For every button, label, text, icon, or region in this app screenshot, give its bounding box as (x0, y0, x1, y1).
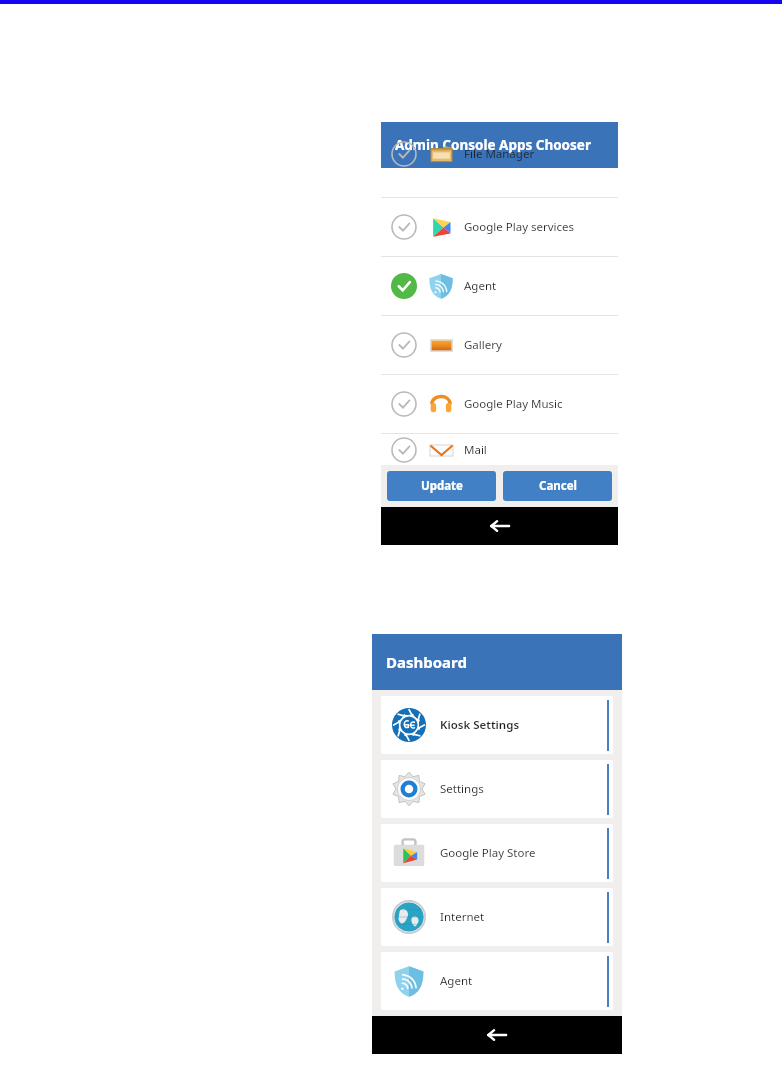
button[interactable]: Internet (381, 888, 613, 946)
staticText: Agent (440, 973, 473, 989)
staticText: Google Play Store (440, 845, 536, 861)
staticText: Admin Console Apps Chooser (395, 136, 591, 154)
staticText: Kiosk Settings (440, 717, 520, 733)
staticText: Cancel (539, 478, 577, 494)
button[interactable]: Agent (381, 952, 613, 1010)
button[interactable]: Agent (381, 257, 618, 315)
button[interactable]: Settings (381, 760, 613, 818)
button[interactable]: Kiosk Settings (381, 696, 613, 754)
button[interactable]: Google Play Store (381, 824, 613, 882)
staticText: Gallery (464, 337, 502, 353)
staticText: Google Play Music (464, 396, 563, 412)
staticText: Update (421, 478, 463, 494)
staticText: Internet (440, 909, 485, 925)
staticText: File Manager (464, 146, 535, 162)
button[interactable]: Google Play services (381, 198, 618, 256)
staticText: Dashboard (386, 652, 467, 672)
button[interactable]: Mail (381, 434, 618, 465)
button[interactable]: Gallery (381, 316, 618, 374)
button[interactable]: Google Play Music (381, 375, 618, 433)
staticText: Google Play services (464, 219, 575, 235)
staticText: Agent (464, 278, 497, 294)
button[interactable]: Back (372, 1016, 622, 1054)
button[interactable]: Cancel (503, 471, 612, 501)
staticText: Settings (440, 781, 484, 797)
button[interactable]: Update (387, 471, 496, 501)
staticText: Mail (464, 442, 487, 458)
button[interactable]: Back (381, 507, 618, 545)
